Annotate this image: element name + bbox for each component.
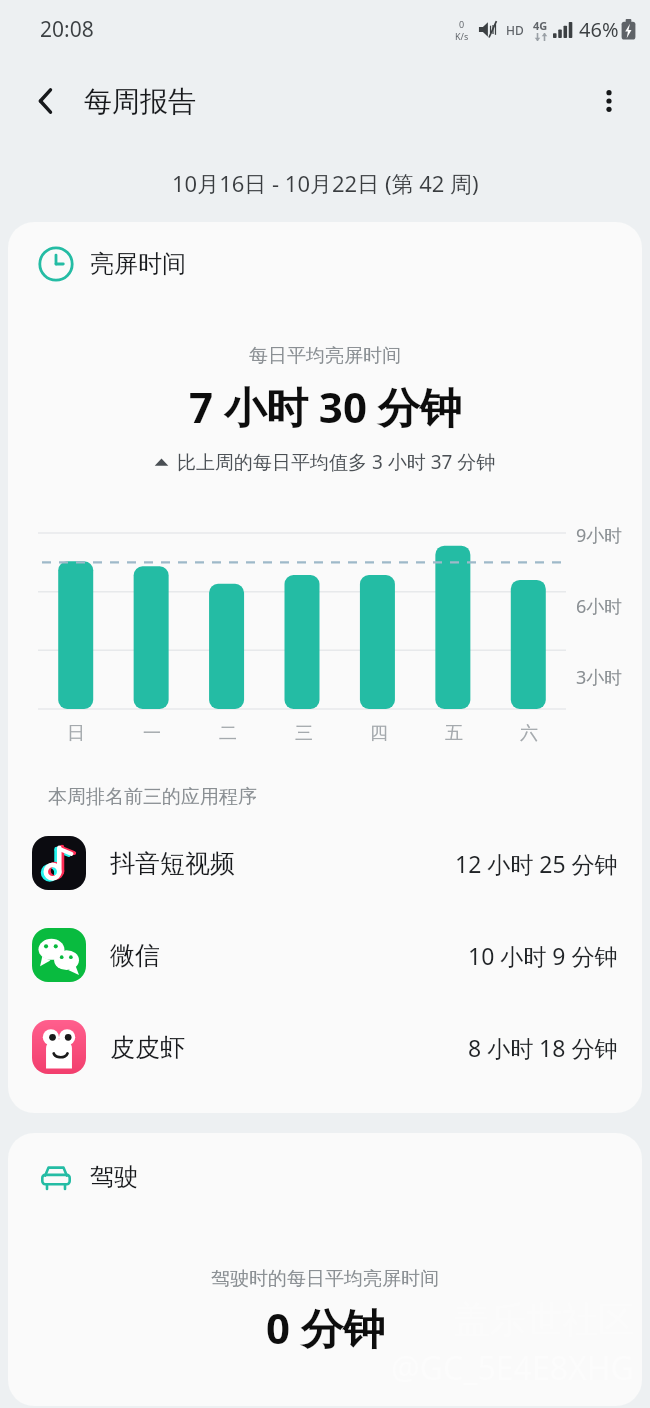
staticText: 0 xyxy=(459,18,465,30)
staticText: 皮皮虾 xyxy=(110,1032,185,1063)
staticText: 10 小时 9 分钟 xyxy=(468,940,618,971)
staticText: 12 小时 25 分钟 xyxy=(455,848,618,879)
staticText: 4G xyxy=(533,18,548,33)
staticText: 6小时 xyxy=(576,594,623,619)
staticText: 驾驶 xyxy=(90,1162,138,1192)
staticText: 每周报告 xyxy=(84,84,196,119)
staticText: 46% xyxy=(579,16,619,43)
staticText: 7 小时 30 分钟 xyxy=(189,378,462,435)
staticText: 三 xyxy=(295,722,313,745)
staticText: 亮屏时间 xyxy=(90,249,186,279)
button[interactable]: 皮皮虾 xyxy=(8,1001,642,1093)
staticText: 二 xyxy=(219,722,237,745)
button[interactable]: More options xyxy=(582,74,636,128)
staticText: 比上周的每日平均值多 3 小时 37 分钟 xyxy=(177,449,496,475)
staticText: 9小时 xyxy=(576,523,623,548)
staticText: 8 小时 18 分钟 xyxy=(468,1032,618,1063)
staticText: HD xyxy=(506,22,524,38)
staticText: 驾驶时的每日平均亮屏时间 xyxy=(211,1267,439,1291)
staticText: 一 xyxy=(143,722,161,745)
staticText: 抖音短视频 xyxy=(110,848,235,879)
button[interactable]: 抖音短视频 xyxy=(8,817,642,909)
button[interactable]: 驾驶 xyxy=(8,1133,642,1406)
staticText: 日 xyxy=(67,722,85,745)
staticText: 每日平均亮屏时间 xyxy=(249,344,401,368)
staticText: 本周排名前三的应用程序 xyxy=(48,785,257,809)
button[interactable]: 亮屏时间 xyxy=(8,222,642,1113)
staticText: 3小时 xyxy=(576,665,623,690)
staticText: 五 xyxy=(445,722,463,745)
staticText: 10月16日 - 10月22日 (第 42 周) xyxy=(172,168,479,198)
button[interactable]: 微信 xyxy=(8,909,642,1001)
staticText: 0 分钟 xyxy=(266,1299,385,1356)
staticText: 六 xyxy=(520,722,538,745)
staticText: 微信 xyxy=(110,940,160,971)
button[interactable]: Back xyxy=(18,73,74,129)
staticText: K/s xyxy=(455,30,469,42)
staticText: 四 xyxy=(370,722,388,745)
staticText: 20:08 xyxy=(40,15,94,44)
